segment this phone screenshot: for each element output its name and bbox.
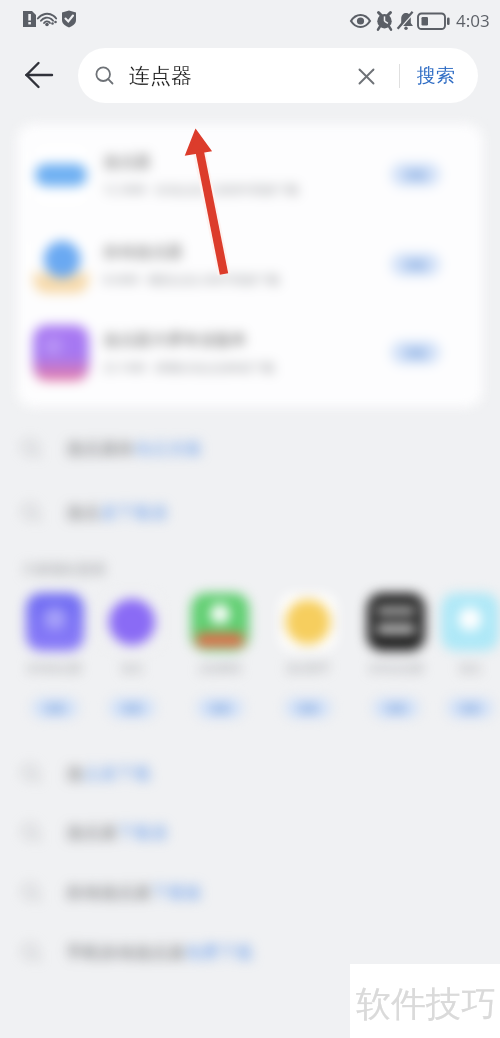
button[interactable]: 手机自动连点器 bbox=[22, 926, 500, 978]
button[interactable]: 安装 bbox=[197, 698, 243, 718]
staticText: 手机自动连点器 bbox=[66, 942, 185, 963]
staticText: 动点击版 bbox=[134, 438, 202, 459]
staticText: 点器下载 bbox=[83, 763, 151, 784]
button[interactable]: 自动连点器 bbox=[17, 220, 483, 309]
staticText: 安装 bbox=[405, 346, 427, 360]
button[interactable]: 连点器 bbox=[78, 48, 478, 103]
staticText: 连点器大师专业版本 bbox=[103, 330, 247, 350]
staticText: 安装 bbox=[122, 702, 142, 715]
button[interactable]: 连点器 bbox=[17, 130, 483, 219]
staticText: 连点器 bbox=[66, 822, 117, 843]
staticText: 软件技巧 bbox=[356, 982, 496, 1026]
button[interactable]: 连点 bbox=[88, 593, 176, 718]
button[interactable]: 安装 bbox=[391, 341, 440, 364]
button[interactable]: 安装 bbox=[447, 698, 493, 718]
staticText: 连点器 bbox=[103, 152, 151, 172]
button[interactable]: 安装 bbox=[285, 698, 331, 718]
button[interactable]: 安装 bbox=[109, 698, 155, 718]
staticText: 安装 bbox=[405, 168, 427, 182]
staticText: 连点助手 bbox=[286, 661, 330, 675]
button[interactable]: 连点器 bbox=[22, 806, 500, 858]
button[interactable]: 自动连点器 bbox=[22, 866, 500, 918]
staticText: 安装 bbox=[405, 258, 427, 272]
button[interactable]: 连点器自 bbox=[22, 422, 500, 474]
staticText: 自动连点器 bbox=[66, 882, 151, 903]
staticText: 4:03 bbox=[456, 9, 490, 32]
button[interactable]: 连点器大师专业版本 bbox=[17, 308, 483, 397]
staticText: 大家都在搜索 bbox=[22, 561, 106, 579]
staticText: 搜索 bbox=[417, 64, 455, 88]
button[interactable]: 点击精灵 bbox=[176, 593, 264, 718]
staticText: 免费下载 bbox=[185, 942, 253, 963]
staticText: 连点 bbox=[66, 502, 100, 523]
staticText: 连点器自 bbox=[66, 438, 134, 459]
button[interactable]: 连点 bbox=[440, 593, 500, 718]
button[interactable]: 安装 bbox=[373, 698, 419, 718]
staticText: 点击精灵 bbox=[198, 661, 242, 675]
staticText: 连点器 bbox=[129, 63, 192, 89]
button[interactable]: 安装 bbox=[32, 698, 78, 718]
button[interactable]: 自动点击器 bbox=[352, 593, 440, 718]
staticText: 安装 bbox=[298, 702, 318, 715]
staticText: 自动连点器 bbox=[103, 242, 183, 262]
staticText: 下载版 bbox=[151, 882, 202, 903]
button[interactable]: 连点 bbox=[22, 486, 500, 538]
button[interactable]: Back bbox=[16, 52, 62, 98]
button[interactable]: 搜索 bbox=[404, 48, 468, 103]
button[interactable]: 安装 bbox=[391, 163, 440, 186]
staticText: 下载器 bbox=[117, 822, 168, 843]
staticText: 23.1MB · 屏幕自动点击神器下载 bbox=[103, 359, 275, 375]
staticText: 安装 bbox=[460, 702, 480, 715]
button[interactable]: 自动连点器 bbox=[21, 593, 88, 718]
staticText: 连 bbox=[66, 763, 83, 784]
staticText: 12.3MB · 自动点击工具软件高速下载 bbox=[103, 181, 299, 197]
button[interactable]: 连点助手 bbox=[264, 593, 352, 718]
button[interactable]: Clear text bbox=[345, 55, 387, 97]
staticText: 器下载器 bbox=[100, 502, 168, 523]
button[interactable]: 连 bbox=[22, 747, 500, 799]
staticText: 8.6MB · 模拟点击小助手高速下载 bbox=[103, 271, 281, 287]
button[interactable]: 安装 bbox=[391, 253, 440, 276]
staticText: 安装 bbox=[45, 702, 65, 715]
staticText: 安装 bbox=[386, 702, 406, 715]
staticText: 安装 bbox=[210, 702, 230, 715]
